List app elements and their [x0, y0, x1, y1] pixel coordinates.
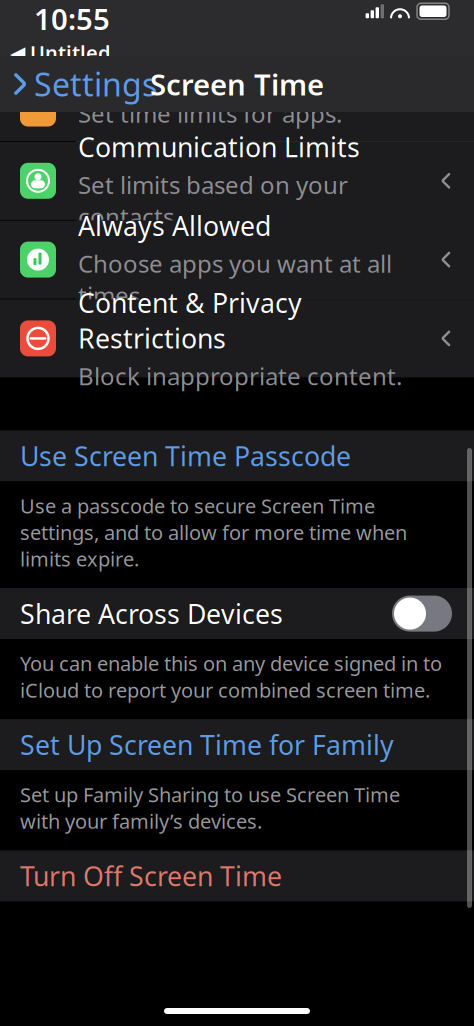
- staticText: Choose apps you want at all times.: [78, 247, 392, 311]
- staticText: You can enable this on any device signed…: [20, 650, 442, 703]
- staticText: Set Up Screen Time for Family: [20, 727, 394, 762]
- button[interactable]: Share Across Devices: [0, 588, 474, 639]
- staticText: Block inappropriate content.: [78, 360, 402, 392]
- staticText: Turn Off Screen Time: [20, 858, 282, 893]
- staticText: Always Allowed: [78, 208, 271, 243]
- staticText: Use a passcode to secure Screen Time set…: [20, 492, 407, 572]
- staticText: ◀ Untitled: [10, 39, 111, 66]
- staticText: Settings: [34, 63, 157, 105]
- staticText: Screen Time: [150, 64, 324, 103]
- button[interactable]: Content & Privacy Restrictions: [0, 299, 474, 377]
- staticText: 10:55: [34, 0, 110, 38]
- button[interactable]: Set Up Screen Time for Family: [0, 719, 474, 770]
- button[interactable]: Always Allowed: [0, 221, 474, 299]
- staticText: Set up Family Sharing to use Screen Time…: [20, 781, 400, 834]
- button[interactable]: Set time limits for apps.: [0, 112, 474, 141]
- button[interactable]: Communication Limits: [0, 142, 474, 220]
- staticText: Communication Limits: [78, 129, 360, 165]
- button[interactable]: Turn Off Screen Time: [0, 850, 474, 901]
- staticText: Content & Privacy Restrictions: [78, 285, 302, 356]
- staticText: Share Across Devices: [20, 596, 283, 631]
- staticText: Set limits based on your contacts.: [78, 169, 348, 232]
- button[interactable]: Use Screen Time Passcode: [0, 430, 474, 481]
- staticText: Use Screen Time Passcode: [20, 438, 351, 474]
- staticText: Set time limits for apps.: [78, 98, 342, 129]
- button[interactable]: Settings: [0, 56, 165, 112]
